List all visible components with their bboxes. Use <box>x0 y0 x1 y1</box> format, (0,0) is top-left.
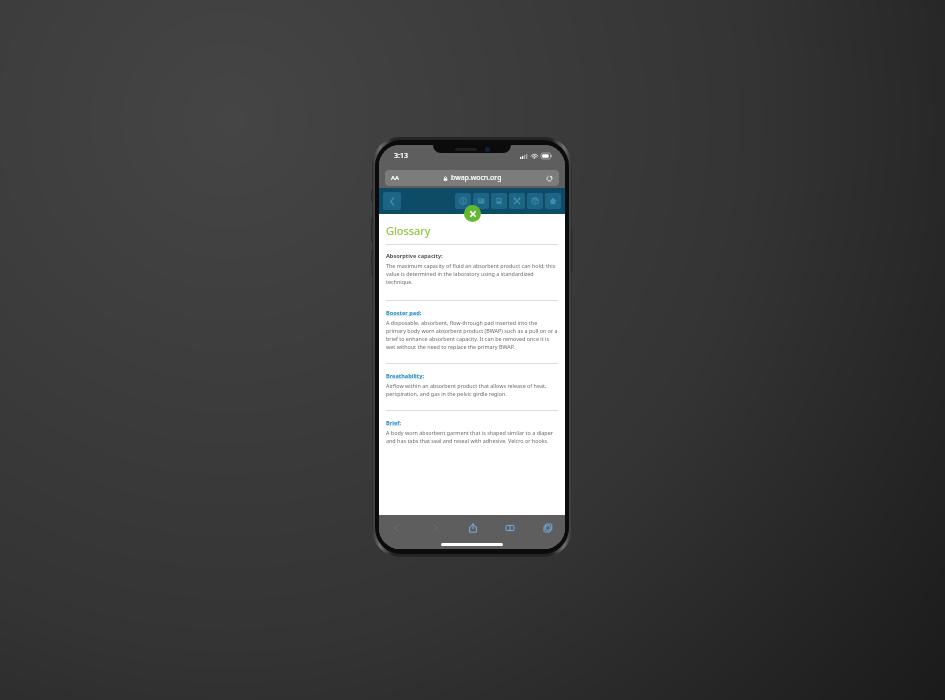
button[interactable]: Brief: <box>386 419 401 427</box>
staticText: Brief: <box>386 419 401 427</box>
button[interactable]: Help <box>527 193 543 209</box>
button[interactable]: Forward <box>426 519 443 536</box>
other: Reload <box>546 175 553 182</box>
staticText: Breathability: <box>386 372 424 380</box>
button[interactable]: Back <box>383 192 401 210</box>
button[interactable]: Breathability: <box>386 372 424 380</box>
button[interactable]: AA <box>385 170 559 186</box>
staticText: bwap.wocn.org <box>451 173 502 183</box>
button[interactable]: Share <box>464 519 481 536</box>
staticText: Booster pad: <box>386 309 422 317</box>
button[interactable]: Booster pad: <box>386 309 422 317</box>
staticText: AA <box>391 174 399 182</box>
button[interactable]: Tabs <box>539 519 556 536</box>
staticText: Absorptive capacity: <box>386 252 443 260</box>
button[interactable]: Close <box>464 205 481 222</box>
staticText: Glossary <box>386 223 431 238</box>
button[interactable]: Tools <box>509 193 525 209</box>
button[interactable]: Resources <box>491 193 507 209</box>
staticText: The maximum capacity of fluid an absorbe… <box>386 262 558 286</box>
button[interactable]: Home <box>545 193 561 209</box>
staticText: A disposable, absorbent, flow-through pa… <box>386 319 558 351</box>
button[interactable]: Info <box>455 193 471 209</box>
button[interactable]: Back <box>388 519 405 536</box>
button[interactable]: News <box>473 193 489 209</box>
staticText: A body worn absorbent garment that is sh… <box>386 429 558 445</box>
staticText: Airflow within an absorbent product that… <box>386 382 558 398</box>
button[interactable]: Bookmarks <box>501 519 518 536</box>
staticText: 3:13 <box>394 151 408 161</box>
